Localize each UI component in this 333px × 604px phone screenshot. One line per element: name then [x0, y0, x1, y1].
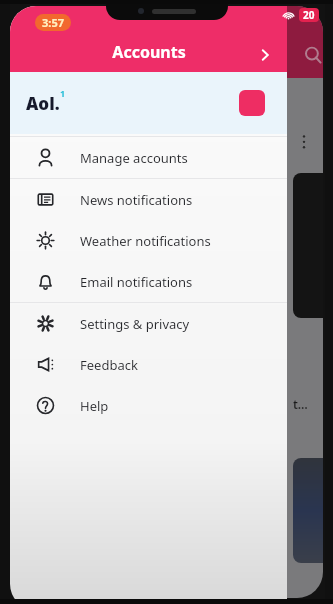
button[interactable]: News notifications: [10, 179, 287, 220]
button[interactable]: Weather notifications: [10, 220, 287, 261]
button[interactable]: Manage accounts: [10, 137, 287, 178]
button[interactable]: Settings & privacy: [10, 303, 287, 344]
staticText: Feedback: [80, 356, 138, 374]
button[interactable]: Collapse accounts: [251, 41, 279, 69]
button[interactable]: Search: [298, 40, 323, 70]
staticText: Manage accounts: [80, 149, 188, 167]
staticText: Weather notifications: [80, 232, 211, 250]
button[interactable]: Email notifications: [10, 261, 287, 302]
staticText: 3:57: [42, 15, 64, 30]
staticText: 20: [303, 8, 315, 22]
staticText: t…: [293, 396, 308, 412]
staticText: Help: [80, 397, 109, 415]
staticText: 1: [60, 87, 66, 99]
staticText: Aol.: [26, 92, 60, 115]
button[interactable]: Feedback: [10, 344, 287, 385]
staticText: Accounts: [112, 41, 186, 63]
staticText: Settings & privacy: [80, 315, 190, 333]
staticText: Email notifications: [80, 273, 193, 291]
staticText: News notifications: [80, 191, 193, 209]
button[interactable]: Aol.: [10, 72, 287, 134]
button[interactable]: Account avatar: [239, 90, 265, 116]
button[interactable]: Help: [10, 385, 287, 426]
